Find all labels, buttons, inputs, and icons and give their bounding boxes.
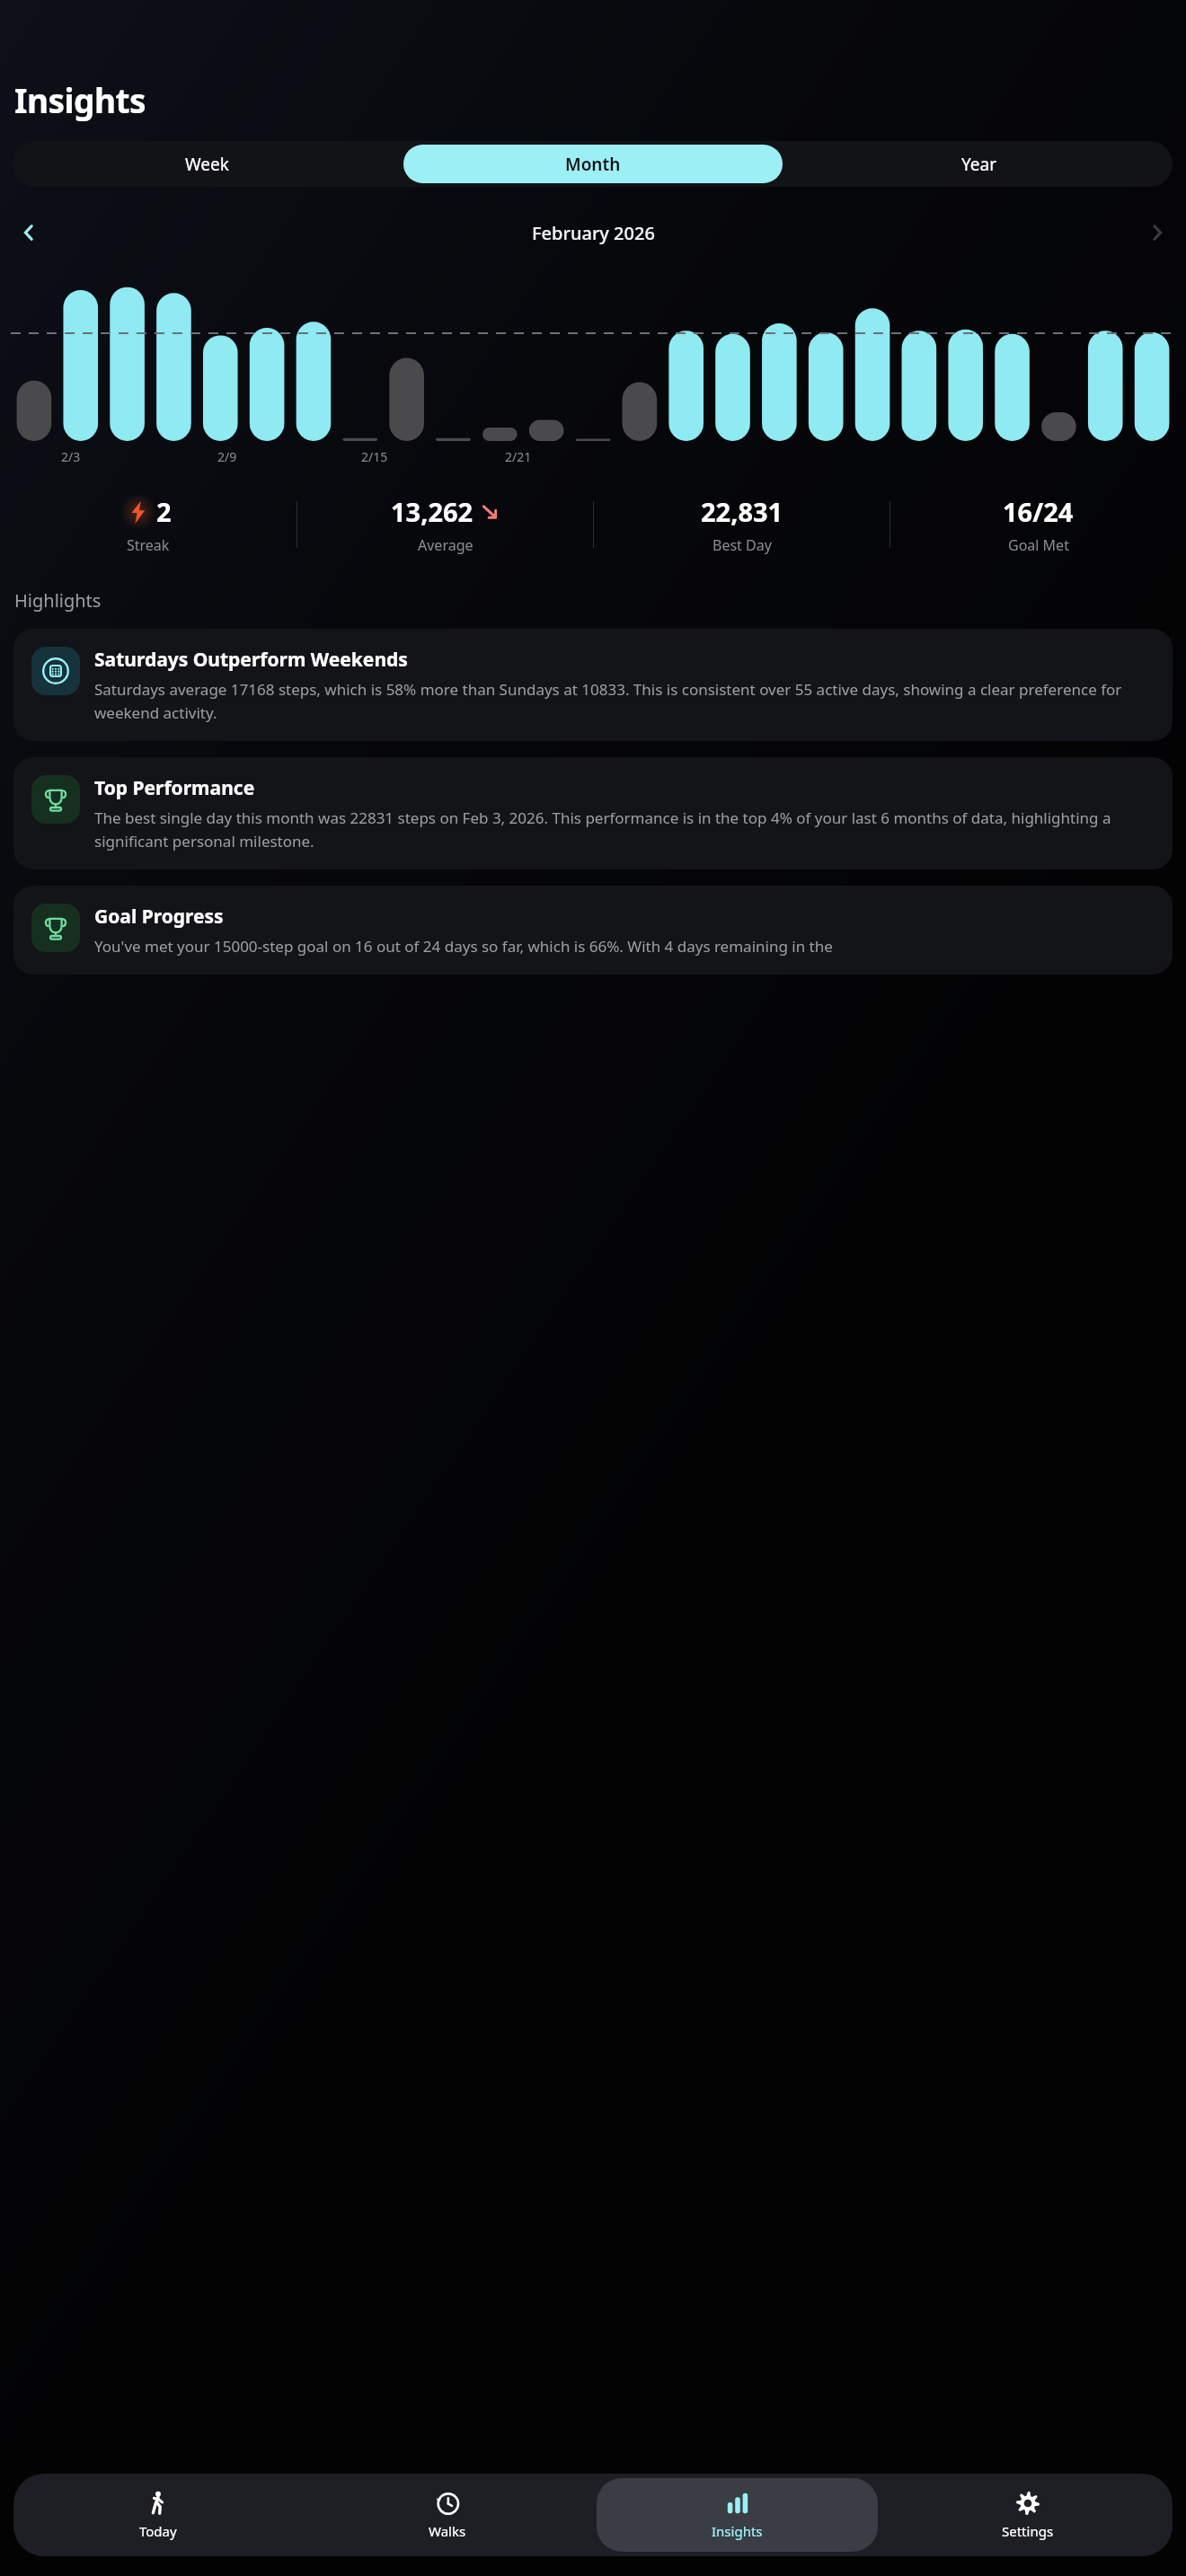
staticText: Year	[961, 153, 997, 176]
staticText: 22,831	[701, 494, 783, 529]
staticText: Walks	[429, 2522, 466, 2540]
staticText: 2/21	[505, 448, 532, 465]
staticText: Today	[139, 2522, 177, 2540]
button[interactable]: Insights	[597, 2478, 878, 2552]
staticText: Month	[565, 153, 621, 176]
button[interactable]: Walks	[307, 2478, 588, 2552]
staticText: 16/24	[1003, 494, 1074, 529]
staticText: 2/15	[361, 448, 388, 465]
button[interactable]: Top Performance	[13, 757, 1173, 869]
button[interactable]: Goal Progress	[13, 886, 1173, 975]
staticText: 2	[156, 494, 172, 529]
button[interactable]: Previous month	[7, 211, 50, 254]
staticText: Streak	[127, 535, 170, 555]
staticText: February 2026	[532, 221, 655, 245]
staticText: 2/9	[217, 448, 237, 465]
staticText: The best single day this month was 22831…	[94, 807, 1155, 851]
staticText: 2/3	[61, 448, 81, 465]
staticText: Highlights	[14, 588, 102, 613]
staticText: Goal Met	[1008, 535, 1069, 555]
button[interactable]: Next month	[1136, 211, 1179, 254]
staticText: You've met your 15000-step goal on 16 ou…	[94, 936, 833, 957]
staticText: Best Day	[712, 535, 772, 555]
staticText: Saturdays average 17168 steps, which is …	[94, 679, 1155, 723]
staticText: Week	[185, 153, 229, 176]
staticText: Saturdays Outperform Weekends	[94, 647, 408, 673]
staticText: 13,262	[391, 494, 474, 529]
staticText: Goal Progress	[94, 904, 224, 930]
staticText: Top Performance	[94, 775, 255, 801]
button[interactable]: Week	[17, 145, 396, 183]
button[interactable]: Saturdays Outperform Weekends	[13, 629, 1173, 741]
staticText: Insights	[712, 2522, 763, 2540]
button[interactable]: Month	[403, 145, 783, 183]
staticText: Average	[418, 535, 474, 555]
staticText: Insights	[14, 77, 146, 122]
button[interactable]: Year	[790, 145, 1169, 183]
staticText: Settings	[1002, 2522, 1054, 2540]
button[interactable]: Settings	[887, 2478, 1168, 2552]
button[interactable]: Today	[18, 2478, 298, 2552]
